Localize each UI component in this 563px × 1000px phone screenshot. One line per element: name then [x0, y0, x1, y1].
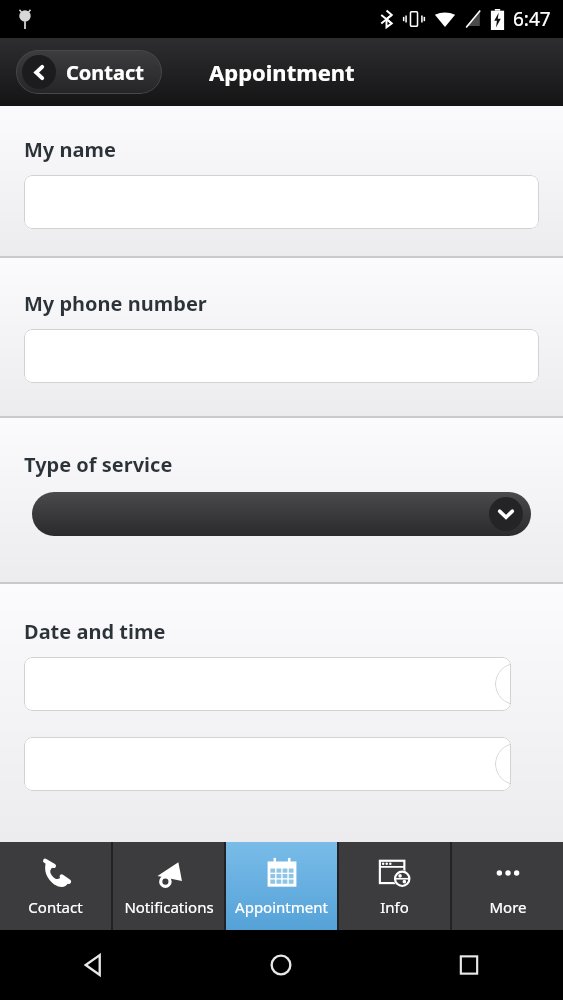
staticText: My name — [24, 136, 116, 163]
button[interactable]: Notifications — [113, 842, 224, 930]
button[interactable]: More — [452, 842, 563, 930]
staticText: Appointment — [235, 897, 328, 917]
button[interactable] — [24, 329, 539, 383]
staticText: Notifications — [124, 897, 214, 917]
button[interactable]: Home — [187, 930, 375, 1000]
button[interactable]: Contact — [0, 842, 111, 930]
staticText: My phone number — [24, 290, 207, 317]
button[interactable]: Appointment — [226, 842, 337, 930]
staticText: 6:47 — [513, 6, 551, 32]
button[interactable]: Pick — [24, 737, 511, 791]
staticText: Appointment — [209, 57, 355, 87]
button[interactable]: Pick — [24, 657, 511, 711]
button[interactable]: Info — [339, 842, 450, 930]
button[interactable]: Pick — [495, 743, 511, 785]
button[interactable] — [24, 175, 539, 229]
button[interactable]: Pick — [495, 663, 511, 705]
button[interactable]: Recents — [375, 930, 563, 1000]
staticText: Info — [380, 897, 409, 917]
staticText: Date and time — [24, 618, 166, 645]
staticText: Contact — [66, 59, 144, 86]
button[interactable]: Back — [0, 930, 187, 1000]
other: Open list — [489, 497, 523, 531]
button[interactable]: Open list — [32, 492, 531, 536]
staticText: More — [489, 897, 527, 917]
button[interactable]: Contact — [22, 55, 144, 89]
staticText: Type of service — [24, 451, 173, 478]
staticText: Contact — [28, 897, 83, 917]
